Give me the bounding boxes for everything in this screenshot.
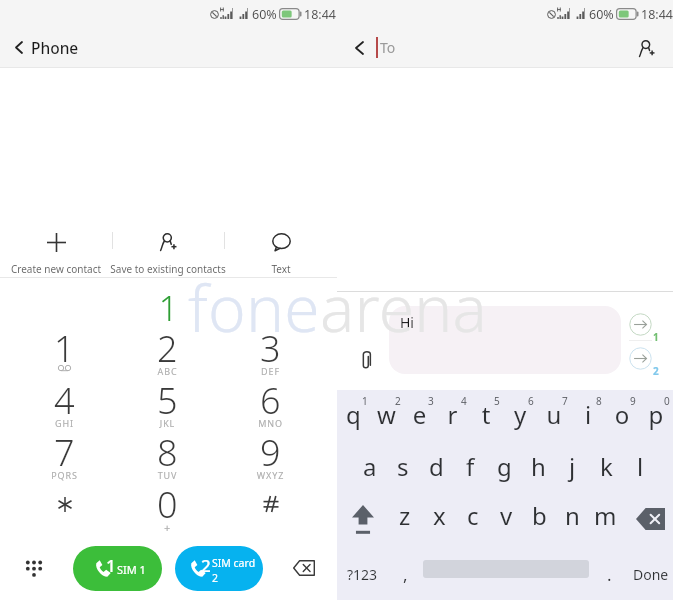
button[interactable]: a — [353, 442, 386, 495]
staticText: MNO — [219, 417, 322, 429]
button[interactable]: c — [456, 495, 490, 548]
button[interactable]: Back — [0, 28, 337, 67]
button[interactable]: 5 — [116, 377, 219, 429]
button[interactable]: b — [523, 495, 556, 548]
staticText: 18:44 — [304, 6, 336, 23]
button[interactable]: n — [556, 495, 589, 548]
button[interactable]: 3 — [403, 390, 436, 442]
staticText: 4 — [461, 394, 467, 408]
button[interactable]: 2 — [175, 546, 263, 591]
staticText: h — [531, 450, 546, 483]
button[interactable]: 2 — [116, 325, 219, 377]
button[interactable]: j — [555, 442, 589, 495]
button[interactable]: Save to existing contacts — [88, 224, 248, 278]
button[interactable]: Attach — [349, 341, 385, 377]
button[interactable]: Back — [355, 41, 364, 55]
button[interactable]: 3 — [219, 325, 322, 377]
staticText: 6 — [260, 376, 281, 425]
button[interactable]: 2 — [370, 390, 403, 442]
staticText: 1 — [0, 285, 337, 331]
staticText: m — [594, 499, 617, 532]
button[interactable]: Text — [201, 224, 361, 278]
staticText: 1 — [106, 554, 116, 577]
button[interactable]: 1 — [73, 546, 162, 591]
staticText: e — [403, 398, 436, 431]
staticText: 0 — [157, 480, 178, 529]
staticText: + — [116, 520, 219, 535]
button[interactable]: h — [521, 442, 555, 495]
staticText: ABC — [116, 365, 219, 377]
staticText: 0 — [664, 394, 670, 408]
button[interactable]: 9 — [605, 390, 639, 442]
button[interactable]: Done — [629, 548, 673, 600]
staticText: , — [403, 563, 408, 586]
button[interactable]: Shift — [337, 495, 388, 548]
staticText: i — [571, 398, 605, 431]
button[interactable]: x — [422, 495, 456, 548]
staticText: JKL — [116, 417, 219, 429]
button[interactable]: 0 — [639, 390, 673, 442]
staticText: ?123 — [347, 565, 378, 584]
button[interactable]: v — [490, 495, 523, 548]
staticText: 9 — [260, 428, 281, 477]
button[interactable]: Backspace — [288, 552, 320, 584]
button[interactable]: s — [386, 442, 419, 495]
staticText: SIM 1 — [117, 562, 146, 577]
button[interactable]: m — [589, 495, 622, 548]
staticText: Done — [633, 565, 669, 584]
button[interactable]: 4 — [13, 377, 116, 429]
button[interactable]: g — [487, 442, 521, 495]
staticText: s — [397, 450, 409, 483]
button[interactable]: 8 — [116, 429, 219, 481]
button[interactable]: l — [623, 442, 657, 495]
staticText: u — [537, 398, 571, 431]
button[interactable]: 8 — [571, 390, 605, 442]
staticText: n — [565, 499, 580, 532]
staticText: 2 — [201, 554, 211, 577]
button[interactable]: f — [453, 442, 487, 495]
button[interactable]: ?123 — [337, 548, 387, 600]
button[interactable]: k — [589, 442, 623, 495]
staticText: 3 — [428, 394, 434, 408]
staticText: Create new contact — [0, 262, 136, 276]
button[interactable]: 1 — [337, 390, 370, 442]
staticText: 60% — [589, 6, 614, 23]
staticText: 7 — [562, 394, 568, 408]
button[interactable]: 6 — [503, 390, 537, 442]
button[interactable]: Delete — [622, 495, 673, 548]
button[interactable]: 1 — [13, 325, 116, 377]
button[interactable]: Keypad options — [18, 552, 50, 584]
button[interactable] — [219, 481, 322, 533]
staticText: To — [380, 38, 396, 57]
button[interactable]: Hi — [389, 306, 621, 374]
button[interactable]: . — [589, 548, 629, 600]
staticText: 2 — [653, 364, 659, 378]
button[interactable]: 5 — [469, 390, 503, 442]
staticText: DEF — [219, 365, 322, 377]
button[interactable]: , — [387, 548, 423, 600]
button[interactable]: Send with SIM 2 — [629, 347, 665, 374]
staticText: 3 — [260, 324, 281, 373]
button[interactable]: 9 — [219, 429, 322, 481]
staticText: fone — [188, 264, 320, 351]
staticText: 4 — [54, 376, 75, 425]
button[interactable]: 4 — [436, 390, 469, 442]
staticText: 1 — [653, 330, 659, 344]
staticText: j — [569, 450, 576, 483]
button[interactable]: 6 — [219, 377, 322, 429]
button[interactable]: z — [388, 495, 422, 548]
button[interactable] — [13, 481, 116, 533]
staticText: y — [503, 398, 537, 431]
staticText: a — [363, 450, 377, 483]
button[interactable]: Send with SIM 1 — [629, 313, 665, 340]
button[interactable]: 7 — [537, 390, 571, 442]
button[interactable]: 0 — [116, 481, 219, 533]
button[interactable]: d — [419, 442, 453, 495]
button[interactable]: 7 — [13, 429, 116, 481]
staticText: g — [497, 450, 512, 483]
button[interactable]: Add contact — [633, 35, 659, 61]
button[interactable]: Create new contact — [0, 224, 136, 278]
staticText: arena — [320, 264, 487, 351]
staticText: 60% — [252, 6, 277, 23]
